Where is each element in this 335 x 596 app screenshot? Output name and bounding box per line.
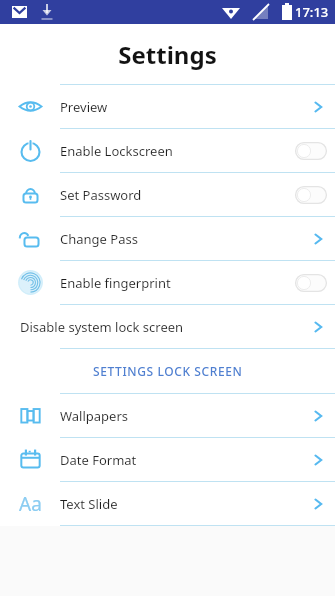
staticText: 17:13 xyxy=(295,3,329,21)
other: Set Password xyxy=(295,173,335,216)
staticText: Disable system lock screen xyxy=(20,318,184,336)
button[interactable]: Change Pass xyxy=(0,217,335,260)
staticText: SETTINGS LOCK SCREEN xyxy=(93,363,243,379)
staticText: Change Pass xyxy=(60,230,138,248)
staticText: Wallpapers xyxy=(60,407,129,425)
button[interactable]: Set Password xyxy=(0,173,335,216)
staticText: Enable Lockscreen xyxy=(60,142,173,160)
button[interactable]: Enable fingerprint xyxy=(0,261,335,304)
other: Date Format xyxy=(301,438,335,481)
staticText: Enable fingerprint xyxy=(60,274,171,292)
button[interactable]: Wallpapers xyxy=(0,394,335,437)
button[interactable]: Enable Lockscreen xyxy=(0,129,335,172)
staticText: Text Slide xyxy=(60,495,118,513)
staticText: Preview xyxy=(60,98,108,116)
button[interactable]: Preview xyxy=(0,85,335,128)
button[interactable]: Aa xyxy=(0,482,335,525)
staticText: Set Password xyxy=(60,186,142,204)
other: Change Pass xyxy=(301,217,335,260)
staticText: Settings xyxy=(0,38,335,71)
button[interactable]: Date Format xyxy=(0,438,335,481)
other: Enable Lockscreen xyxy=(295,129,335,172)
staticText: Date Format xyxy=(60,451,137,469)
other: Preview xyxy=(301,85,335,128)
other: Text Slide xyxy=(301,482,335,525)
button[interactable]: Disable system lock screen xyxy=(0,305,335,348)
other: Enable fingerprint xyxy=(295,261,335,304)
other: Wallpapers xyxy=(301,394,335,437)
other: Disable system lock screen xyxy=(301,305,335,348)
staticText: Aa xyxy=(19,491,42,517)
